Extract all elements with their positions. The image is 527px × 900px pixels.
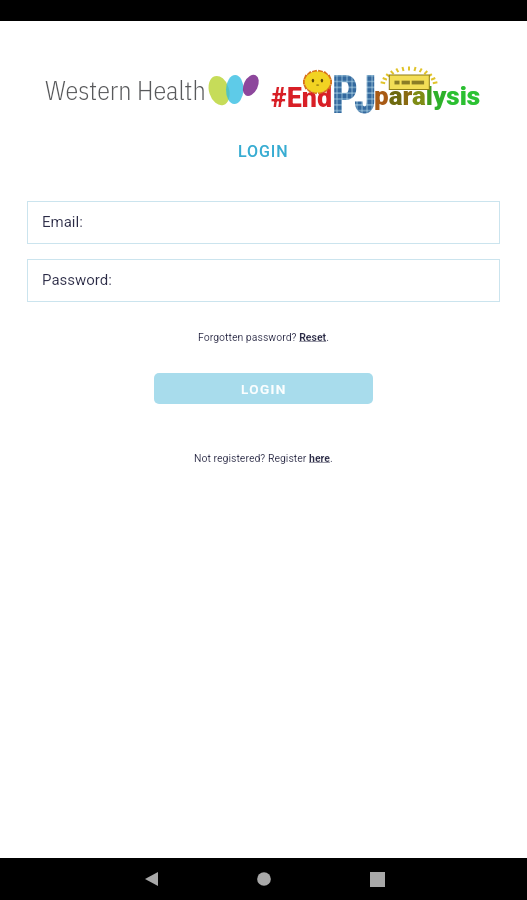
staticText: paralysis [374,81,481,111]
button[interactable]: Not registered? Register here. [194,452,333,464]
staticText: Email: [42,213,83,231]
staticText: PJ [332,64,377,123]
button[interactable]: Password: [27,259,500,302]
staticText: LOGIN [238,142,289,161]
button[interactable]: Recents [347,858,407,900]
button[interactable]: Home [234,858,294,900]
button[interactable]: Email: [27,201,500,244]
staticText: Password: [42,271,112,289]
staticText: LOGIN [241,381,287,397]
button[interactable]: Back [121,858,181,900]
staticText: #End [271,82,333,114]
button[interactable]: LOGIN [154,373,373,404]
staticText: Western Health [45,73,206,107]
button[interactable]: Forgotten password? Reset. [198,331,329,343]
